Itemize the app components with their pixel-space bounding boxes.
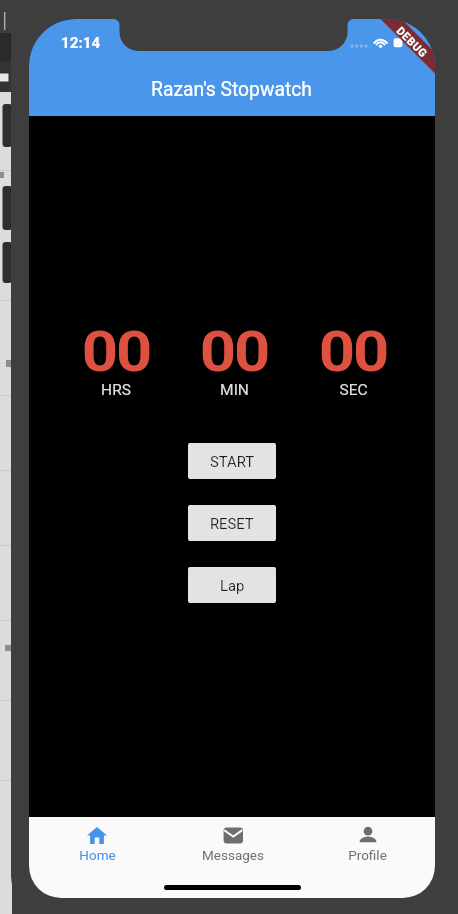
- button[interactable]: Home: [29, 817, 165, 867]
- staticText: START: [210, 453, 255, 470]
- staticText: 00: [199, 320, 268, 384]
- staticText: DEBUG: [394, 24, 430, 61]
- staticText: MIN: [220, 381, 249, 399]
- button[interactable]: Messages: [165, 817, 300, 867]
- staticText: RESET: [210, 515, 254, 532]
- staticText: Messages: [202, 847, 264, 863]
- staticText: 00: [318, 320, 387, 384]
- button[interactable]: Profile: [300, 817, 435, 867]
- staticText: SEC: [339, 381, 368, 399]
- staticText: Home: [79, 847, 116, 863]
- staticText: 00: [81, 320, 150, 384]
- button[interactable]: Lap: [188, 567, 276, 603]
- staticText: Profile: [348, 847, 387, 863]
- staticText: Lap: [220, 577, 245, 594]
- button[interactable]: START: [188, 443, 276, 479]
- staticText: HRS: [101, 381, 131, 399]
- button[interactable]: RESET: [188, 505, 276, 541]
- staticText: 12:14: [61, 34, 101, 52]
- staticText: Razan's Stopwatch: [151, 78, 312, 101]
